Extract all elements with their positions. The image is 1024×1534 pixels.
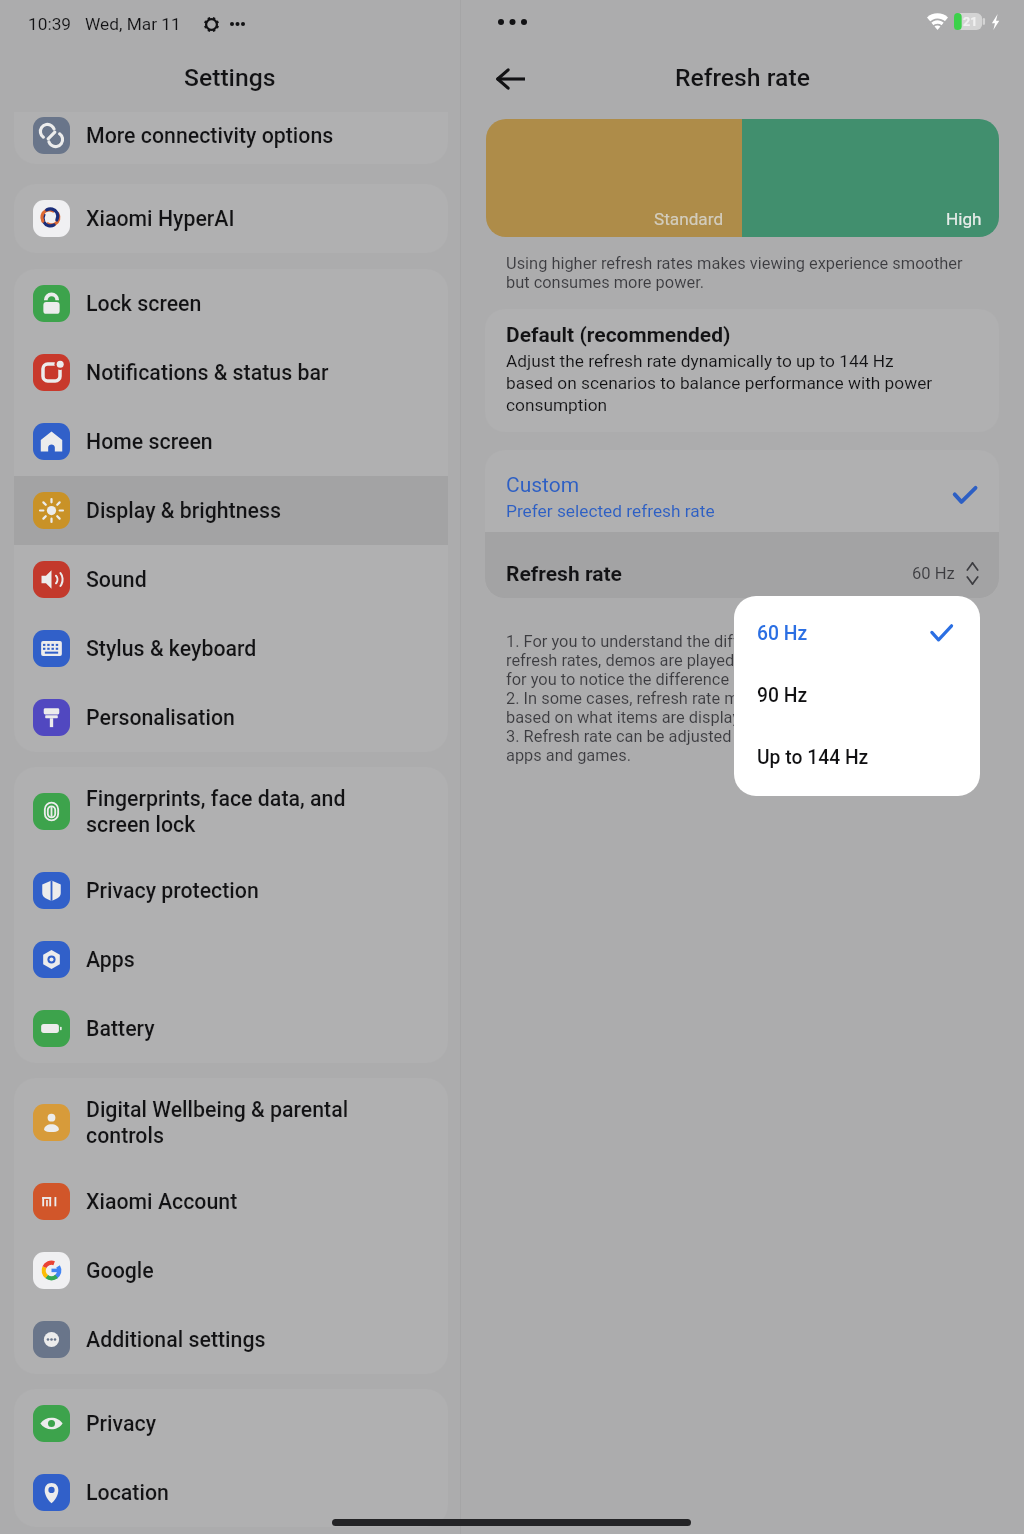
- staticText: Xiaomi Account: [86, 1189, 238, 1214]
- button[interactable]: Privacy: [14, 1389, 448, 1458]
- button[interactable]: Settings shortcut: [198, 11, 224, 37]
- staticText: Standard: [654, 209, 724, 229]
- staticText: Battery: [86, 1016, 155, 1041]
- staticText: Custom: [506, 473, 580, 498]
- staticText: Adjust the refresh rate dynamically to u…: [506, 351, 933, 415]
- staticText: 10:39: [28, 14, 72, 34]
- button[interactable]: Back: [486, 55, 534, 103]
- staticText: Notifications & status bar: [86, 360, 329, 385]
- staticText: Personalisation: [86, 705, 235, 730]
- button[interactable]: More options: [488, 2, 536, 42]
- staticText: 1. For you to understand the difference …: [506, 632, 858, 765]
- staticText: Using higher refresh rates makes viewing…: [506, 254, 963, 292]
- staticText: Stylus & keyboard: [86, 636, 257, 661]
- staticText: Google: [86, 1258, 154, 1283]
- button[interactable]: Apps: [14, 925, 448, 994]
- button[interactable]: Up to 144 Hz: [734, 726, 980, 788]
- staticText: Fingerprints, face data, and screen lock: [86, 786, 346, 837]
- button[interactable]: Custom: [485, 450, 999, 532]
- staticText: Additional settings: [86, 1327, 266, 1352]
- staticText: High: [946, 209, 982, 229]
- button[interactable]: Xiaomi Account: [14, 1167, 448, 1236]
- staticText: Sound: [86, 567, 147, 592]
- button[interactable]: Google: [14, 1236, 448, 1305]
- button[interactable]: Standard: [486, 119, 742, 237]
- staticText: Up to 144 Hz: [757, 746, 869, 769]
- button[interactable]: 90 Hz: [734, 664, 980, 726]
- button[interactable]: Xiaomi HyperAI: [14, 184, 448, 253]
- staticText: 60 Hz: [912, 564, 955, 583]
- staticText: Privacy protection: [86, 878, 259, 903]
- button[interactable]: Fingerprints, face data, and screen lock: [14, 767, 448, 856]
- button[interactable]: More options: [224, 11, 250, 37]
- staticText: Default (recommended): [506, 323, 731, 348]
- button[interactable]: Lock screen: [14, 269, 448, 338]
- staticText: Location: [86, 1480, 169, 1505]
- staticText: 60 Hz: [757, 622, 808, 645]
- button[interactable]: Home screen: [14, 407, 448, 476]
- staticText: 90 Hz: [757, 684, 808, 707]
- button[interactable]: Privacy protection: [14, 856, 448, 925]
- staticText: Refresh rate: [506, 562, 622, 587]
- staticText: Prefer selected refresh rate: [506, 501, 715, 521]
- staticText: Wed, Mar 11: [85, 14, 181, 34]
- staticText: Xiaomi HyperAI: [86, 206, 235, 231]
- button[interactable]: Additional settings: [14, 1305, 448, 1374]
- button[interactable]: Personalisation: [14, 683, 448, 752]
- button[interactable]: More connectivity options: [14, 112, 448, 164]
- button[interactable]: Sound: [14, 545, 448, 614]
- staticText: Home screen: [86, 429, 213, 454]
- button[interactable]: Default (recommended): [485, 309, 999, 432]
- staticText: More connectivity options: [86, 123, 334, 148]
- staticText: Lock screen: [86, 291, 202, 316]
- button[interactable]: 60 Hz: [734, 602, 980, 664]
- staticText: Digital Wellbeing & parental controls: [86, 1097, 349, 1148]
- button[interactable]: Notifications & status bar: [14, 338, 448, 407]
- staticText: Display & brightness: [86, 498, 281, 523]
- staticText: Refresh rate: [675, 63, 810, 92]
- staticText: Privacy: [86, 1411, 157, 1436]
- staticText: 21: [963, 14, 978, 29]
- button[interactable]: Battery: [14, 994, 448, 1063]
- staticText: Settings: [184, 63, 276, 92]
- button[interactable]: Digital Wellbeing & parental controls: [14, 1078, 448, 1167]
- staticText: Apps: [86, 947, 135, 972]
- button[interactable]: Refresh rate: [485, 532, 999, 598]
- button[interactable]: Location: [14, 1458, 448, 1527]
- button[interactable]: Stylus & keyboard: [14, 614, 448, 683]
- button[interactable]: Display & brightness: [14, 476, 448, 545]
- button[interactable]: High: [742, 119, 999, 237]
